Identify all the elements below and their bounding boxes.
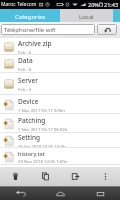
staticText: 21:43 (104, 1, 119, 8)
staticText: Feb : 6 (18, 49, 32, 55)
staticText: Setting (18, 133, 41, 142)
staticText: Categories (15, 13, 46, 21)
staticText: 1 Nov 2017 03:17 06:02h (18, 126, 68, 132)
button[interactable]: Server (0, 73, 120, 95)
button[interactable]: Back (97, 24, 117, 35)
staticText: Data (18, 56, 33, 65)
staticText: Device (18, 97, 39, 106)
button[interactable]: Recents (80, 187, 120, 200)
button[interactable]: Patching (0, 114, 120, 133)
button[interactable]: More (90, 167, 120, 186)
button[interactable]: Copy (30, 167, 60, 186)
staticText: 20% (88, 1, 99, 8)
staticText: Feb : 3 (18, 86, 32, 92)
button[interactable]: Archive zip (0, 38, 120, 55)
button[interactable]: Delete (0, 167, 30, 186)
button[interactable]: Local (60, 9, 113, 22)
staticText: history.txt (18, 150, 45, 157)
button[interactable]: Categories (0, 9, 60, 22)
staticText: 26 Jan 2018 10:55 10:4h (18, 143, 66, 148)
button[interactable]: Home (40, 187, 80, 200)
staticText: Feb : 8 (18, 66, 32, 72)
button[interactable]: Back (0, 187, 40, 200)
button[interactable]: Device (0, 95, 120, 114)
staticText: Server (18, 76, 38, 85)
staticText: Téléphone/file wifi (4, 26, 56, 34)
button[interactable]: Setting (0, 133, 120, 148)
staticText: 1 Nov 2017 03:17 2:06n (18, 107, 65, 113)
button[interactable]: history.txt (0, 148, 120, 165)
button[interactable]: Data (0, 55, 120, 73)
staticText: Maroc Telecom (1, 1, 37, 8)
button[interactable]: Téléphone/file wifi (4, 24, 95, 35)
staticText: Local (79, 13, 94, 21)
staticText: 29 Nov 2018 14:06 1:60n (18, 158, 68, 164)
staticText: Patching (18, 116, 46, 125)
button[interactable]: Paste (60, 167, 90, 186)
staticText: Archive zip (18, 39, 52, 48)
